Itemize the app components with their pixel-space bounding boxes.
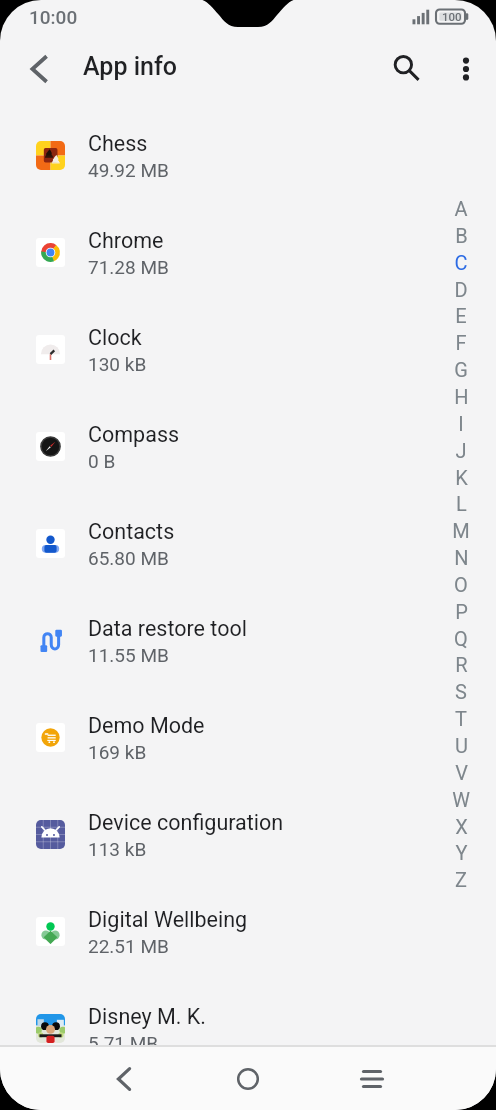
staticText: F	[455, 331, 467, 354]
button[interactable]: C	[446, 249, 476, 276]
staticText: K	[455, 466, 468, 489]
staticText: N	[454, 546, 469, 569]
button[interactable]: L	[446, 490, 476, 517]
button[interactable]: S	[446, 678, 476, 705]
staticText: Contacts	[88, 519, 175, 544]
button[interactable]: X	[446, 813, 476, 840]
staticText: G	[454, 358, 468, 381]
staticText: Disney M. K.	[88, 1004, 207, 1029]
button[interactable]: Compass	[0, 398, 496, 495]
staticText: M	[452, 519, 470, 542]
staticText: H	[454, 385, 469, 408]
staticText: Data restore tool	[88, 616, 247, 641]
button[interactable]: G	[446, 356, 476, 383]
staticText: D	[454, 278, 468, 301]
button[interactable]: Disney M. K.	[0, 980, 496, 1077]
button[interactable]: O	[446, 571, 476, 598]
staticText: 65.80 MB	[88, 547, 169, 569]
staticText: X	[455, 815, 468, 838]
button[interactable]: R	[446, 651, 476, 678]
button[interactable]: Contacts	[0, 495, 496, 592]
button[interactable]: W	[446, 786, 476, 813]
button[interactable]: M	[446, 517, 476, 544]
staticText: 22.51 MB	[88, 935, 169, 957]
button[interactable]: E	[446, 302, 476, 329]
staticText: T	[455, 707, 467, 730]
staticText: Q	[454, 627, 468, 650]
staticText: I	[458, 412, 464, 435]
button[interactable]: Back	[100, 1055, 148, 1103]
button[interactable]: Data restore tool	[0, 592, 496, 689]
staticText: Demo Mode	[88, 713, 205, 738]
staticText: 10:00	[29, 6, 78, 28]
button[interactable]: K	[446, 464, 476, 491]
button[interactable]: P	[446, 598, 476, 625]
button[interactable]: Y	[446, 839, 476, 866]
staticText: 5.71 MB	[88, 1032, 159, 1054]
staticText: Y	[455, 841, 468, 864]
staticText: U	[455, 734, 468, 757]
button[interactable]: Chrome	[0, 204, 496, 301]
button[interactable]: V	[446, 759, 476, 786]
staticText: 71.28 MB	[88, 256, 169, 278]
button[interactable]: Chess	[0, 107, 496, 204]
button[interactable]: B	[446, 222, 476, 249]
button[interactable]: Z	[446, 866, 476, 893]
button[interactable]: H	[446, 383, 476, 410]
button[interactable]: Home	[224, 1055, 272, 1103]
staticText: 0 B	[88, 450, 116, 472]
staticText: V	[455, 761, 468, 784]
button[interactable]: Recent apps	[348, 1055, 396, 1103]
staticText: 113 kB	[88, 838, 147, 860]
staticText: Chrome	[88, 228, 164, 253]
staticText: W	[452, 788, 470, 811]
staticText: J	[455, 439, 467, 462]
staticText: O	[454, 573, 468, 596]
staticText: Device configuration	[88, 810, 284, 835]
staticText: Z	[455, 868, 467, 891]
staticText: Chess	[88, 131, 148, 156]
staticText: 169 kB	[88, 741, 147, 763]
staticText: A	[454, 197, 468, 220]
staticText: 49.92 MB	[88, 159, 169, 181]
staticText: R	[455, 653, 468, 676]
button[interactable]: N	[446, 544, 476, 571]
staticText: S	[455, 680, 467, 703]
button[interactable]: Digital Wellbeing	[0, 883, 496, 980]
button[interactable]: Device configuration	[0, 786, 496, 883]
staticText: Compass	[88, 422, 180, 447]
button[interactable]: I	[446, 410, 476, 437]
button[interactable]: Search	[381, 45, 429, 93]
button[interactable]: A	[446, 195, 476, 222]
staticText: L	[456, 492, 467, 515]
staticText: 11.55 MB	[88, 644, 169, 666]
button[interactable]: Back	[14, 45, 62, 93]
staticText: P	[455, 600, 468, 623]
staticText: 130 kB	[88, 353, 147, 375]
button[interactable]: T	[446, 705, 476, 732]
staticText: E	[455, 304, 467, 327]
staticText: Clock	[88, 325, 142, 350]
button[interactable]: F	[446, 329, 476, 356]
button[interactable]: Demo Mode	[0, 689, 496, 786]
staticText: C	[454, 251, 468, 274]
button[interactable]: Q	[446, 625, 476, 652]
button[interactable]: D	[446, 276, 476, 303]
staticText: App info	[83, 52, 177, 81]
button[interactable]: Clock	[0, 301, 496, 398]
button[interactable]: More options	[442, 45, 490, 93]
button[interactable]: J	[446, 437, 476, 464]
staticText: B	[455, 224, 468, 247]
button[interactable]: U	[446, 732, 476, 759]
staticText: 100	[442, 10, 462, 23]
staticText: Digital Wellbeing	[88, 907, 248, 932]
